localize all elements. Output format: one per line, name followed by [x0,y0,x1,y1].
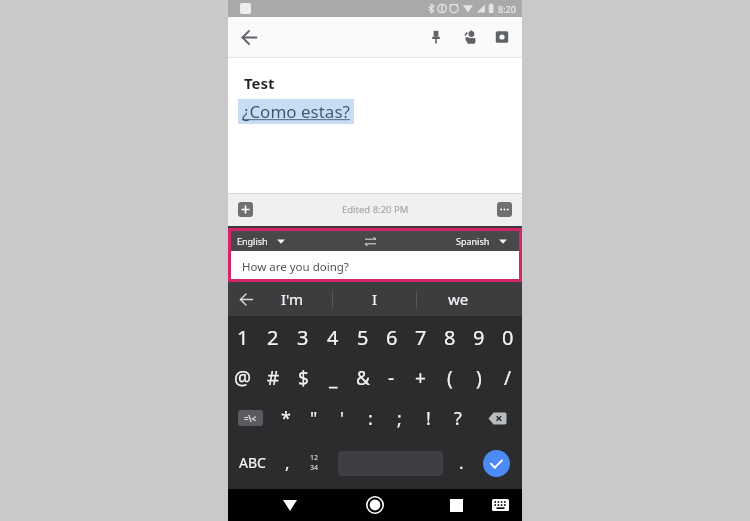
button[interactable] [425,26,447,48]
button[interactable]: 6 [377,316,406,358]
staticText: How are you doing? [242,259,349,275]
staticText: + [415,365,426,391]
button[interactable] [235,288,257,310]
button[interactable]: 8 [435,316,464,358]
staticText: 12 [310,453,319,463]
button[interactable]: + [406,358,435,398]
button[interactable]: , [270,449,304,475]
button[interactable]: ; [385,398,414,438]
button[interactable] [362,492,388,518]
button[interactable]: " [300,398,328,438]
button[interactable]: ' [328,398,356,438]
button[interactable]: I [347,282,403,316]
staticText: ABC [239,453,266,472]
staticText: =\< [244,413,257,424]
button[interactable] [238,26,260,48]
button[interactable]: 5 [348,316,377,358]
staticText: 34 [310,463,319,473]
button[interactable] [361,234,379,248]
staticText: 0 [502,324,514,351]
staticText: _ [329,365,338,391]
staticText: 6 [386,324,398,351]
button[interactable] [491,26,513,48]
button[interactable] [443,492,469,518]
button[interactable]: _ [318,358,348,398]
button[interactable] [487,492,513,518]
staticText: ? [454,406,462,431]
staticText: , [285,451,290,474]
staticText: * [281,406,291,431]
staticText: I [372,289,378,309]
staticText: Edited 8:20 PM [342,203,409,216]
button[interactable]: How are you doing? [231,251,519,279]
button[interactable]: 7 [406,316,435,358]
button[interactable]: / [493,358,522,398]
button[interactable] [497,202,512,217]
staticText: 9 [473,324,485,351]
staticText: 8 [444,324,456,351]
staticText: @ [234,365,252,391]
staticText: # [267,365,280,391]
button[interactable]: . [444,449,478,475]
staticText: ¿Como estas? [242,100,350,123]
button[interactable]: - [377,358,406,398]
staticText: we [448,289,469,309]
button[interactable]: 12 [301,451,327,475]
button[interactable]: ? [443,398,472,438]
button[interactable]: Spanish [456,235,507,247]
staticText: - [388,365,395,391]
button[interactable]: @ [228,358,258,398]
button[interactable]: $ [288,358,318,398]
staticText: ' [340,406,345,431]
button[interactable]: 1 [228,316,258,358]
staticText: 5 [357,324,369,351]
staticText: / [504,365,512,391]
staticText: 4 [327,324,339,351]
staticText: Test [244,73,275,93]
button[interactable]: ¿Como estas? [242,100,350,123]
button[interactable]: 0 [493,316,522,358]
button[interactable]: ( [435,358,464,398]
staticText: Spanish [456,235,490,247]
staticText: 7 [415,324,427,351]
staticText: ) [476,365,482,391]
staticText: " [310,406,318,431]
button[interactable]: ABC [235,449,269,475]
staticText: 2 [267,324,279,351]
staticText: . [459,451,464,474]
staticText: ! [426,406,431,431]
button[interactable]: ! [414,398,443,438]
button[interactable]: 2 [258,316,288,358]
button[interactable]: English [237,235,285,247]
staticText: 8:20 [498,3,516,15]
button[interactable]: =\< [228,398,272,438]
staticText: I'm [281,289,304,309]
button[interactable]: I'm [264,282,320,316]
button[interactable]: we [430,282,486,316]
button[interactable]: 9 [464,316,493,358]
staticText: & [356,365,370,391]
button[interactable]: 3 [288,316,318,358]
button[interactable]: : [356,398,385,438]
staticText: $ [298,365,309,391]
button[interactable] [238,202,253,217]
button[interactable]: # [258,358,288,398]
staticText: : [368,406,373,431]
button[interactable] [277,492,303,518]
button[interactable] [483,450,510,477]
staticText: 1 [237,324,249,351]
staticText: 3 [297,324,309,351]
button[interactable] [472,398,522,438]
button[interactable]: 4 [318,316,348,358]
button[interactable]: * [272,398,300,438]
button[interactable]: & [348,358,377,398]
staticText: English [237,235,268,247]
button[interactable]: ) [464,358,493,398]
button[interactable] [458,26,480,48]
staticText: ( [447,365,453,391]
staticText: ; [397,406,402,431]
